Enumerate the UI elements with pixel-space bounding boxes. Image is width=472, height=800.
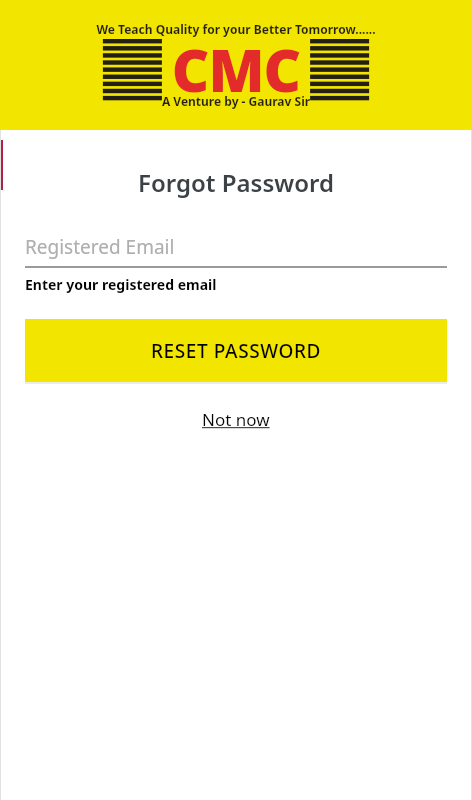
staticText: Registered Email: [25, 234, 175, 260]
staticText: We Teach Quality for your Better Tomorro…: [0, 21, 472, 37]
staticText: Enter your registered email: [25, 275, 217, 294]
button[interactable]: RESET PASSWORD: [25, 319, 447, 382]
staticText: RESET PASSWORD: [151, 338, 322, 364]
button[interactable]: Registered Email: [25, 228, 447, 266]
button[interactable]: Not now: [192, 404, 280, 435]
staticText: CMC: [0, 30, 472, 109]
staticText: Forgot Password: [0, 166, 472, 199]
staticText: Not now: [202, 408, 270, 431]
staticText: A Venture by - Gaurav Sir: [0, 93, 472, 109]
